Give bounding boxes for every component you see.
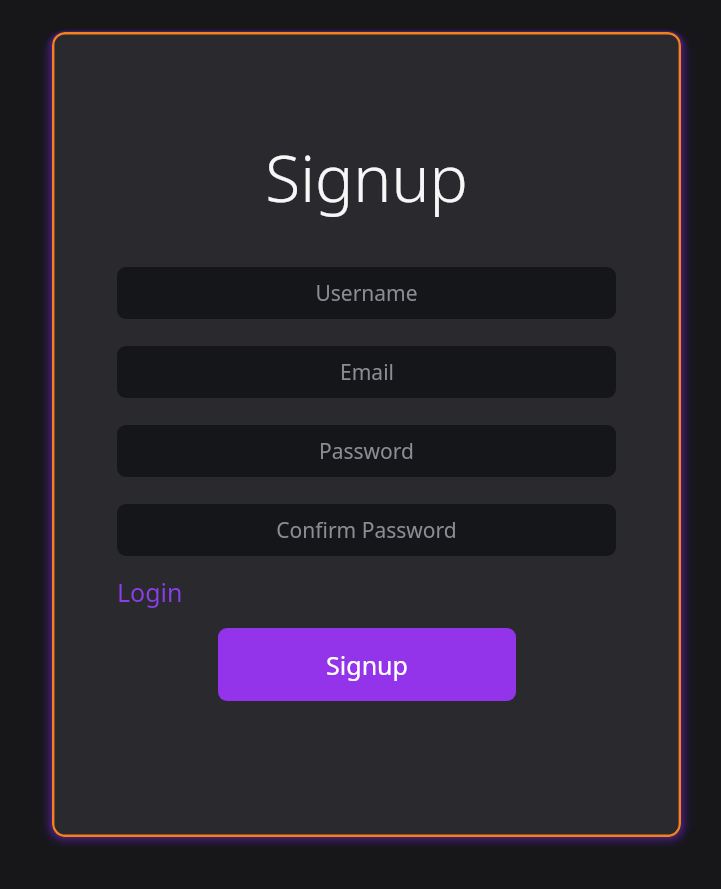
button[interactable]: Signup	[218, 628, 516, 701]
button[interactable]: Login	[117, 573, 183, 611]
staticText: Login	[117, 575, 183, 609]
staticText: Email	[340, 358, 394, 387]
button[interactable]: Email	[117, 346, 616, 398]
staticText: Signup	[117, 134, 616, 221]
staticText: Username	[315, 279, 418, 308]
staticText: Signup	[326, 648, 408, 682]
button[interactable]: Password	[117, 425, 616, 477]
button[interactable]: Confirm Password	[117, 504, 616, 556]
staticText: Password	[319, 437, 414, 466]
button[interactable]: Username	[117, 267, 616, 319]
staticText: Confirm Password	[276, 516, 457, 545]
